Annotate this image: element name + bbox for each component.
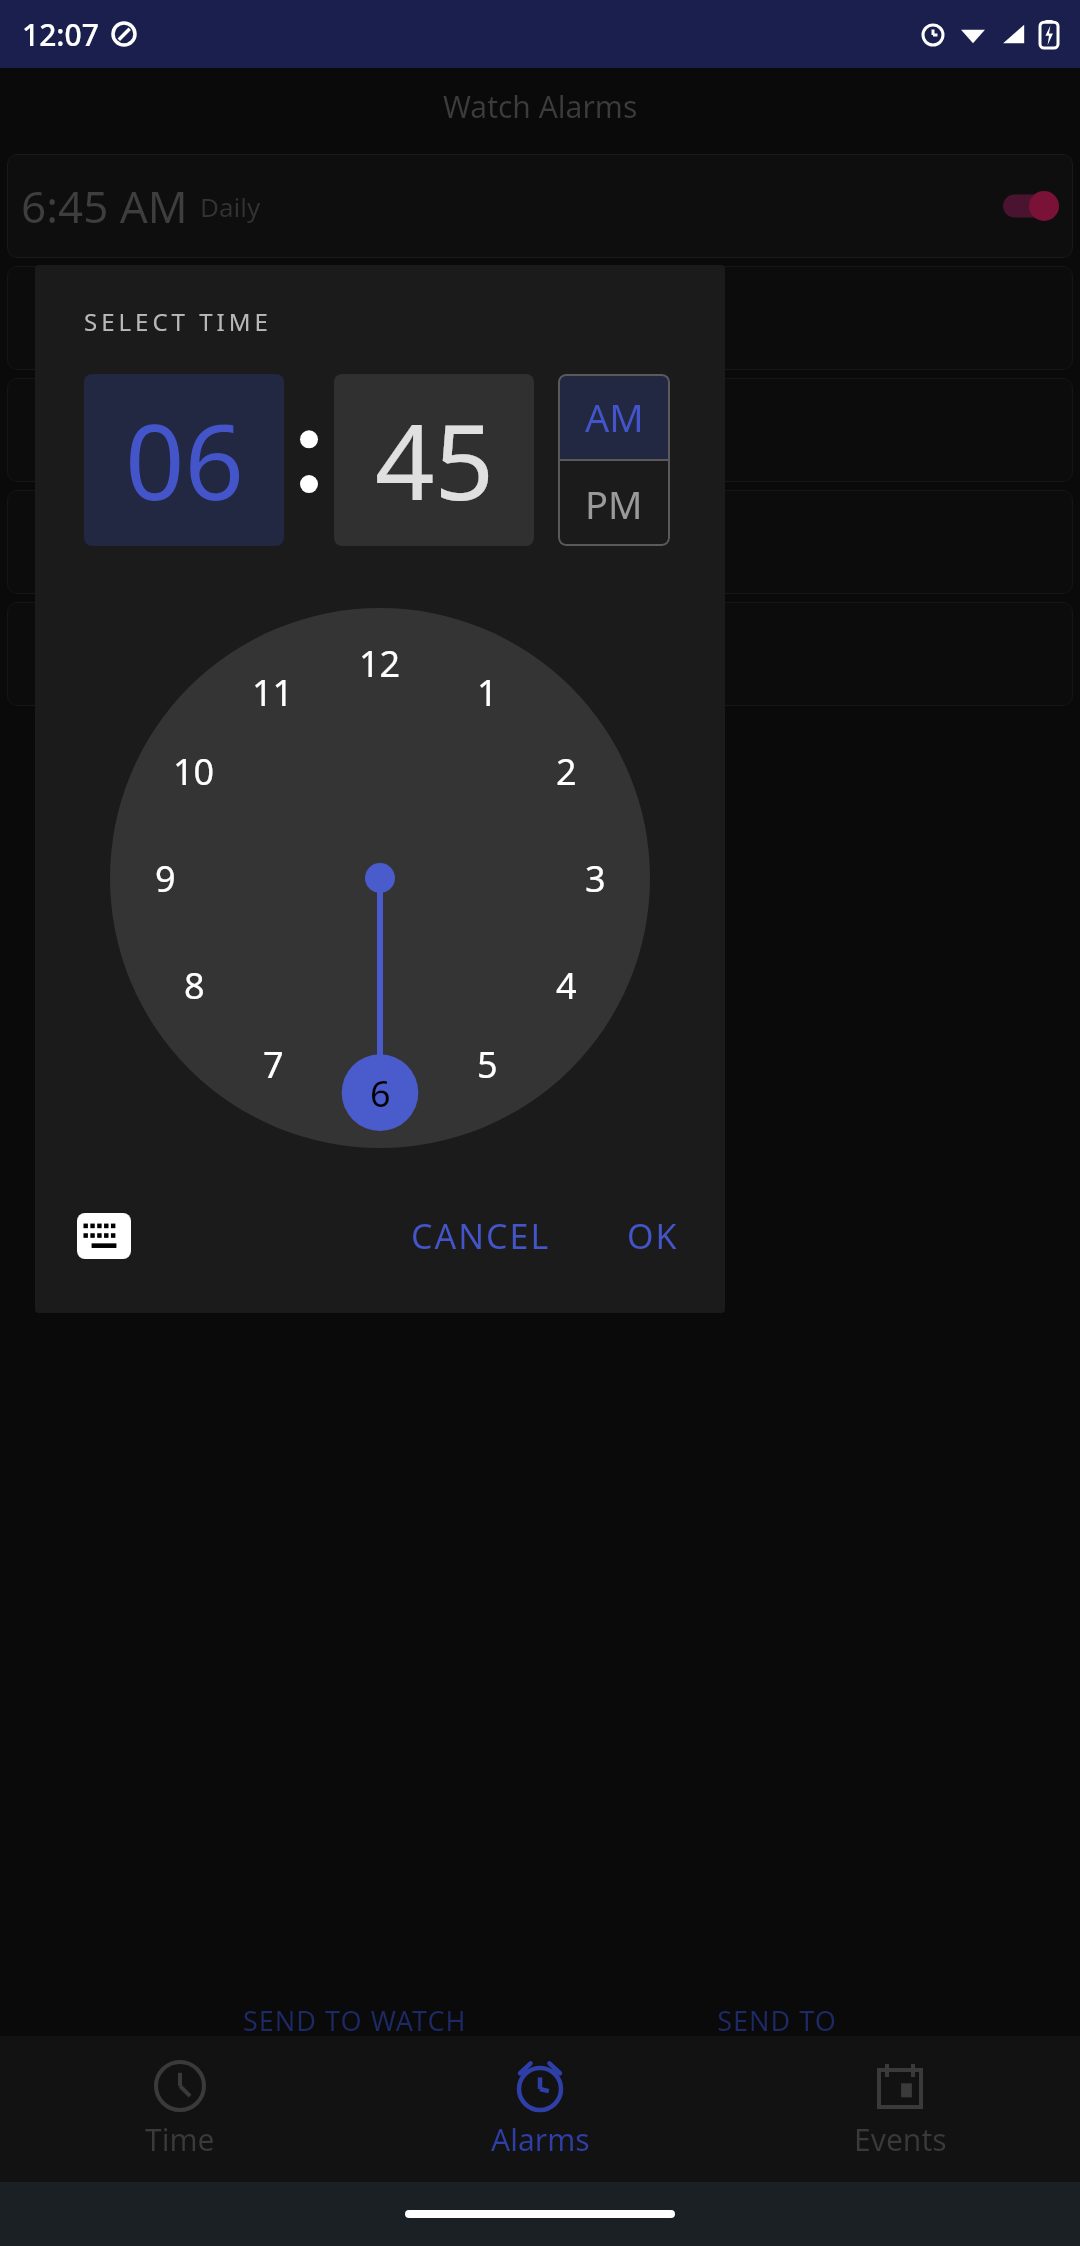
staticText: 4 (556, 961, 577, 1010)
staticText: 7 (263, 1040, 284, 1089)
button[interactable] (7, 490, 1073, 594)
staticText: OK (627, 1213, 679, 1259)
staticText: SEND TO PHONE (717, 2002, 837, 2076)
staticText: AM (585, 391, 644, 443)
staticText: 3 (585, 854, 606, 903)
button[interactable]: Clock dial (110, 608, 650, 1148)
button[interactable]: SEND TO PHONE (711, 1996, 843, 2082)
button[interactable] (7, 602, 1073, 706)
button[interactable]: AM (558, 374, 670, 459)
staticText: Daily (200, 189, 261, 224)
staticText: 5 (477, 1040, 498, 1089)
staticText: 06 (125, 389, 244, 531)
staticText: CANCEL (411, 1213, 551, 1259)
button[interactable]: CANCEL (395, 1199, 567, 1273)
staticText: 8 (184, 961, 205, 1010)
staticText: Time (145, 2119, 215, 2160)
staticText: 11 (252, 668, 294, 717)
staticText: Watch Alarms (443, 86, 638, 127)
staticText: 10 (173, 747, 215, 796)
button[interactable]: 45 (334, 374, 534, 546)
button[interactable]: OK (611, 1199, 695, 1273)
staticText: 9 (155, 854, 176, 903)
staticText: 12 (359, 639, 401, 688)
staticText: SEND TO WATCH (243, 2002, 467, 2039)
button[interactable]: Switch to text input (75, 1207, 133, 1265)
button[interactable]: Alarms (360, 2036, 720, 2182)
button[interactable] (7, 378, 1073, 482)
staticText: SELECT TIME (84, 305, 272, 338)
staticText: 45 (375, 389, 494, 531)
staticText: 12:07 (22, 14, 99, 55)
staticText: Events (854, 2119, 947, 2160)
staticText: 6 (370, 1069, 391, 1118)
staticText: 6:45 AM (21, 176, 188, 236)
button[interactable] (7, 266, 1073, 370)
button[interactable]: PM (558, 461, 670, 546)
button[interactable]: 6:45 AM (7, 154, 1073, 258)
staticText: Alarms (491, 2119, 590, 2160)
button[interactable]: SEND TO WATCH (237, 1996, 473, 2045)
staticText: 1 (477, 668, 498, 717)
button[interactable]: Events (720, 2036, 1080, 2182)
staticText: PM (585, 478, 643, 530)
staticText: 2 (556, 747, 577, 796)
button[interactable]: 06 (84, 374, 284, 546)
button[interactable]: Time (0, 2036, 360, 2182)
